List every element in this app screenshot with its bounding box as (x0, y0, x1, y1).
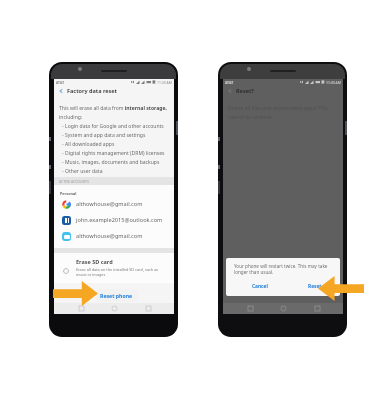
staticText: All downloaded apps (65, 141, 115, 148)
button[interactable]: Reset phone (100, 292, 133, 299)
staticText: - (62, 132, 64, 139)
staticText: althowhouse@gmail.com (76, 232, 143, 240)
button[interactable]: Recents (74, 303, 88, 314)
staticText: Your phone will restart twice. This may … (234, 263, 328, 269)
staticText: althowhouse@gmail.com (76, 200, 143, 208)
staticText: AT&T (225, 80, 234, 85)
button[interactable]: Recents (243, 303, 257, 314)
staticText: Delete all files and downloaded apps? Th… (228, 105, 328, 112)
staticText: Erase all data on the installed SD card,… (76, 267, 164, 277)
staticText: Erase SD card (76, 258, 113, 265)
staticText: cannot be undone. (228, 114, 273, 121)
button[interactable]: Cancel (252, 283, 268, 290)
button[interactable]: Erase SD card (54, 253, 174, 283)
other: Back (57, 87, 65, 95)
staticText: Music, images, documents and backups (65, 159, 160, 166)
button[interactable]: Back (223, 85, 343, 96)
staticText: Other user data (65, 168, 103, 175)
button[interactable]: Back (54, 85, 174, 96)
staticText: 11:30 AM (157, 80, 172, 85)
staticText: AT&T (56, 80, 65, 85)
button[interactable]: Home (107, 303, 121, 314)
staticText: - (62, 141, 64, 148)
button[interactable]: john.example2015@outlook.com (62, 212, 174, 228)
staticText: longer than usual. (234, 269, 274, 275)
button[interactable]: Back (141, 303, 155, 314)
staticText: - (62, 168, 64, 175)
staticText: Login data for Google and other accounts (65, 123, 164, 130)
button[interactable]: althowhouse@gmail.com (62, 196, 174, 212)
other: Back (226, 87, 234, 95)
staticText: Reset phone (100, 292, 133, 299)
button[interactable]: Back (310, 303, 324, 314)
staticText: Digital rights management (DRM) licenses (65, 150, 165, 157)
staticText: Personal (60, 191, 77, 196)
button[interactable]: Home (276, 303, 290, 314)
staticText: System and app data and settings (65, 132, 146, 139)
staticText: This will erase all data from internal s… (59, 105, 167, 112)
staticText: - (62, 150, 64, 157)
button[interactable]: Reset (308, 283, 322, 290)
other: Arrow pointing left (318, 276, 364, 301)
staticText: - (62, 123, 64, 130)
staticText: including: (59, 114, 83, 121)
staticText: Reset (308, 283, 322, 290)
staticText: Factory data reset (67, 87, 117, 94)
staticText: - (62, 159, 64, 166)
other: Arrow pointing right (53, 281, 98, 306)
staticText: john.example2015@outlook.com (76, 216, 163, 224)
staticText: Cancel (252, 283, 268, 290)
staticText: 11:30 AM (326, 80, 341, 85)
staticText: Reset? (236, 87, 254, 94)
staticText: ACTIVE ACCOUNTS (59, 179, 89, 184)
button[interactable]: althowhouse@gmail.com (62, 228, 174, 244)
